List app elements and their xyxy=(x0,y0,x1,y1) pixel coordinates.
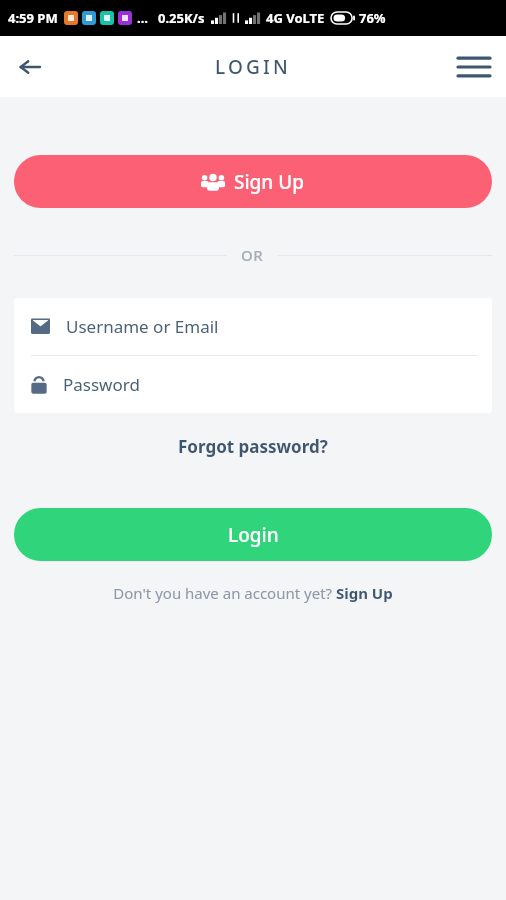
staticText: OR xyxy=(241,245,264,265)
staticText: Forgot password? xyxy=(178,435,328,458)
button[interactable]: Don't you have an account yet? Sign Up xyxy=(101,577,405,609)
button[interactable]: Back xyxy=(6,43,54,91)
button[interactable]: Forgot password? xyxy=(166,427,340,466)
button[interactable]: Sign Up xyxy=(14,155,492,208)
staticText: Login xyxy=(228,522,279,548)
staticText: Username or Email xyxy=(66,315,219,338)
staticText: Don't you have an account yet? Sign Up xyxy=(113,583,393,603)
staticText: 0.25K/s xyxy=(158,9,205,27)
staticText: Sign Up xyxy=(234,169,305,195)
button[interactable]: Login xyxy=(14,508,492,561)
staticText: 4:59 PM xyxy=(8,9,58,27)
staticText: Password xyxy=(63,373,140,396)
button[interactable]: Menu xyxy=(450,43,498,91)
staticText: LOGIN xyxy=(215,54,291,80)
staticText: 76% xyxy=(359,9,386,27)
staticText: 4G VoLTE xyxy=(266,9,325,27)
button[interactable]: Password xyxy=(14,356,492,413)
button[interactable]: Username or Email xyxy=(14,298,492,355)
staticText: ... xyxy=(137,9,148,27)
